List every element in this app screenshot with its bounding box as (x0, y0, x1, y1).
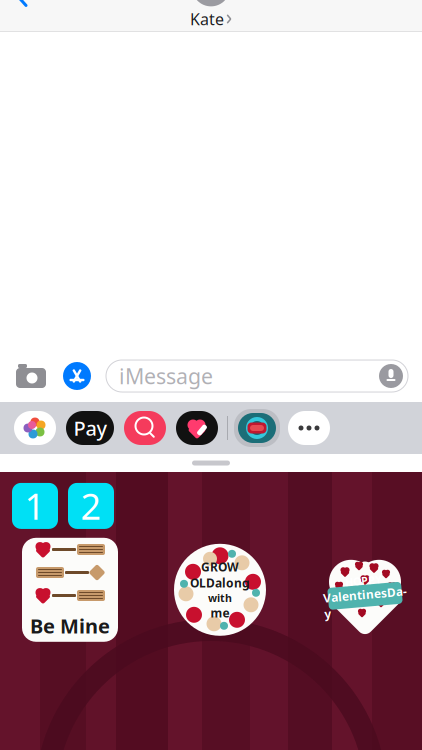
button[interactable]: Search images (124, 411, 166, 445)
button[interactable]: Be Mine (22, 538, 118, 642)
button[interactable]: Valentine Stickers (234, 409, 280, 447)
button[interactable]: Camera (14, 359, 48, 393)
button[interactable]: Apple Pay (66, 411, 114, 445)
button[interactable]: Digital Touch (176, 411, 218, 445)
button[interactable]: GROW (172, 542, 268, 638)
button[interactable]: More apps (288, 411, 330, 445)
staticText: Be Mine (30, 612, 110, 639)
staticText: 2 (80, 482, 101, 530)
staticText: GROW (201, 559, 239, 575)
button[interactable]: HOPPY (322, 552, 408, 628)
staticText: Kate (190, 8, 224, 30)
staticText: Pay (73, 415, 107, 441)
staticText: iMessage (119, 362, 213, 390)
button[interactable]: KB (180, 0, 242, 30)
button[interactable]: Photos (14, 411, 56, 445)
button[interactable]: Apps (60, 359, 94, 393)
button[interactable]: 2 (68, 482, 114, 530)
button[interactable]: iMessage (106, 360, 408, 392)
staticText: me (210, 605, 229, 621)
staticText: 1 (24, 482, 45, 530)
staticText: KB (197, 0, 224, 1)
staticText: OLDalong (190, 575, 250, 591)
staticText: ValentinesDay (323, 586, 407, 618)
button[interactable]: 1 (12, 482, 58, 530)
staticText: HOPPY (346, 573, 383, 587)
button[interactable]: Back (0, 0, 44, 24)
staticText: with (208, 591, 232, 605)
